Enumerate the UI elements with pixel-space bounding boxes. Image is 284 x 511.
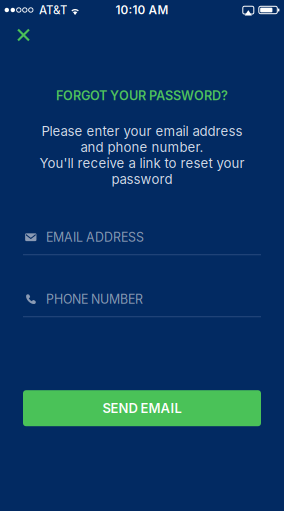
staticText: SEND EMAIL [102, 400, 181, 416]
button[interactable]: EMAIL ADDRESS [23, 230, 261, 255]
staticText: EMAIL ADDRESS [46, 230, 144, 245]
staticText: PHONE NUMBER [46, 292, 143, 307]
staticText: You'll receive a link to reset your [39, 155, 244, 171]
staticText: password [111, 171, 172, 187]
staticText: FORGOT YOUR PASSWORD? [56, 88, 228, 103]
button[interactable]: PHONE NUMBER [23, 292, 261, 317]
staticText: AT&T [39, 3, 67, 17]
staticText: and phone number. [80, 139, 203, 155]
button[interactable]: Close [6, 21, 40, 49]
staticText: Please enter your email address [41, 123, 242, 139]
staticText: 10:10 AM [115, 3, 168, 17]
button[interactable]: SEND EMAIL [23, 390, 261, 426]
